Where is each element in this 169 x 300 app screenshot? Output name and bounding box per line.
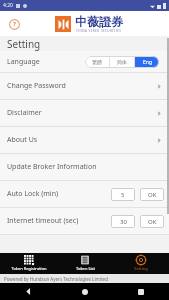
button[interactable]: Change Password: [0, 73, 169, 99]
button[interactable]: OK: [140, 215, 164, 228]
staticText: 5: [121, 191, 125, 199]
staticText: 30: [120, 218, 127, 226]
staticText: Language: [7, 57, 40, 67]
button[interactable]: OK: [140, 188, 164, 201]
staticText: Setting: [7, 37, 41, 51]
button[interactable]: Recents: [113, 283, 169, 300]
button[interactable]: Token Registration: [0, 253, 57, 274]
staticText: Internet timeout (sec): [7, 216, 79, 226]
staticText: Change Password: [7, 81, 66, 91]
button[interactable]: Disclaimer: [0, 100, 169, 126]
button[interactable]: 30: [111, 215, 135, 228]
staticText: OK: [148, 191, 157, 199]
button[interactable]: Home: [57, 283, 113, 300]
button[interactable]: Token List: [57, 253, 113, 274]
button[interactable]: Setting: [113, 253, 169, 274]
staticText: 繁體: [92, 59, 102, 65]
staticText: Token List: [76, 266, 95, 271]
staticText: Eng: [143, 59, 152, 66]
staticText: 4:20: [3, 2, 13, 9]
staticText: Auto Lock (min): [7, 189, 59, 199]
staticText: Setting: [134, 266, 148, 271]
button[interactable]: About Us: [0, 127, 169, 153]
staticText: 中薇證券: [75, 14, 123, 29]
button[interactable]: Eng: [135, 56, 159, 68]
staticText: Update Broker Information: [7, 162, 97, 172]
button[interactable]: 5: [111, 188, 135, 201]
button[interactable]: 繁體: [85, 56, 109, 68]
button[interactable]: Back: [0, 283, 57, 300]
staticText: OK: [148, 218, 157, 226]
button[interactable]: Help: [7, 17, 21, 31]
staticText: CHINA VERED SECURITIES: [76, 29, 122, 33]
staticText: Token Registration: [11, 266, 47, 271]
staticText: Disclaimer: [7, 108, 42, 118]
staticText: About Us: [7, 135, 38, 145]
staticText: ?: [13, 20, 16, 28]
button[interactable]: Update Broker Information: [0, 154, 169, 180]
staticText: Powered by Hundsun Ayers Technologies Li…: [4, 276, 108, 282]
staticText: 简体: [117, 59, 127, 65]
button[interactable]: 简体: [110, 56, 134, 68]
